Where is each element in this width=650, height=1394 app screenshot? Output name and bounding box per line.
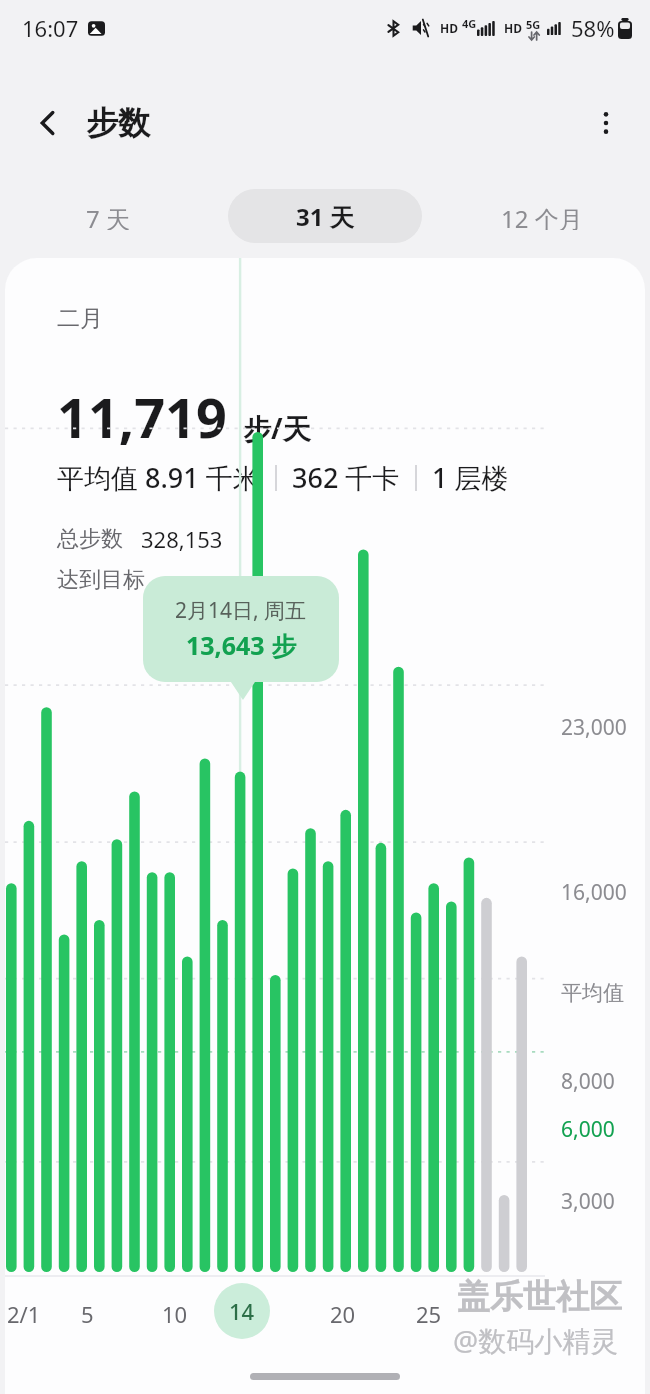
staticText: HD (440, 20, 458, 36)
staticText: 2月14日, 周五 (175, 596, 307, 625)
staticText: HD (504, 20, 522, 36)
button[interactable]: 14 (214, 1283, 270, 1339)
staticText: 步/天 (243, 409, 311, 447)
staticText: @数码小精灵 (453, 1321, 619, 1359)
button[interactable]: 7 天 (46, 189, 170, 243)
staticText: 14 (229, 1296, 255, 1326)
staticText: 8,000 (561, 1067, 615, 1096)
staticText: 5G (526, 17, 541, 32)
staticText: 7 天 (86, 202, 130, 230)
staticText: 1 层楼 (432, 459, 509, 496)
staticText: 达到目标 (57, 566, 145, 594)
staticText: 13,643 步 (186, 628, 297, 662)
button[interactable]: Back (22, 97, 74, 149)
staticText: 10 (162, 1299, 188, 1329)
staticText: 步数 (86, 103, 150, 143)
staticText: 总步数 (57, 525, 123, 553)
staticText: 6,000 (561, 1115, 615, 1144)
staticText: 盖乐世社区 (457, 1276, 622, 1318)
button[interactable]: 2月14日, 周五 (143, 576, 339, 682)
staticText: 4G (462, 16, 477, 31)
staticText: 362 千卡 (292, 459, 400, 496)
staticText: 25 (416, 1299, 442, 1329)
staticText: 3,000 (561, 1187, 615, 1216)
staticText: 16:07 (22, 13, 79, 43)
staticText: 20 (330, 1299, 356, 1329)
button[interactable]: 12 个月 (475, 189, 609, 243)
button[interactable]: More options (580, 97, 632, 149)
staticText: 58% (571, 13, 615, 43)
staticText: 23,000 (561, 713, 627, 742)
staticText: 平均值 (561, 980, 624, 1006)
staticText: 11,719 (57, 380, 227, 454)
staticText: 2/1 (7, 1299, 41, 1329)
button[interactable]: 31 天 (228, 189, 422, 243)
staticText: 5 (81, 1299, 94, 1329)
staticText: 平均值 8.91 千米 (57, 459, 260, 496)
staticText: 31 天 (296, 200, 354, 233)
staticText: 12 个月 (501, 202, 583, 230)
staticText: 二月 (57, 304, 103, 333)
staticText: 16,000 (561, 878, 627, 907)
staticText: 328,153 (141, 524, 223, 554)
